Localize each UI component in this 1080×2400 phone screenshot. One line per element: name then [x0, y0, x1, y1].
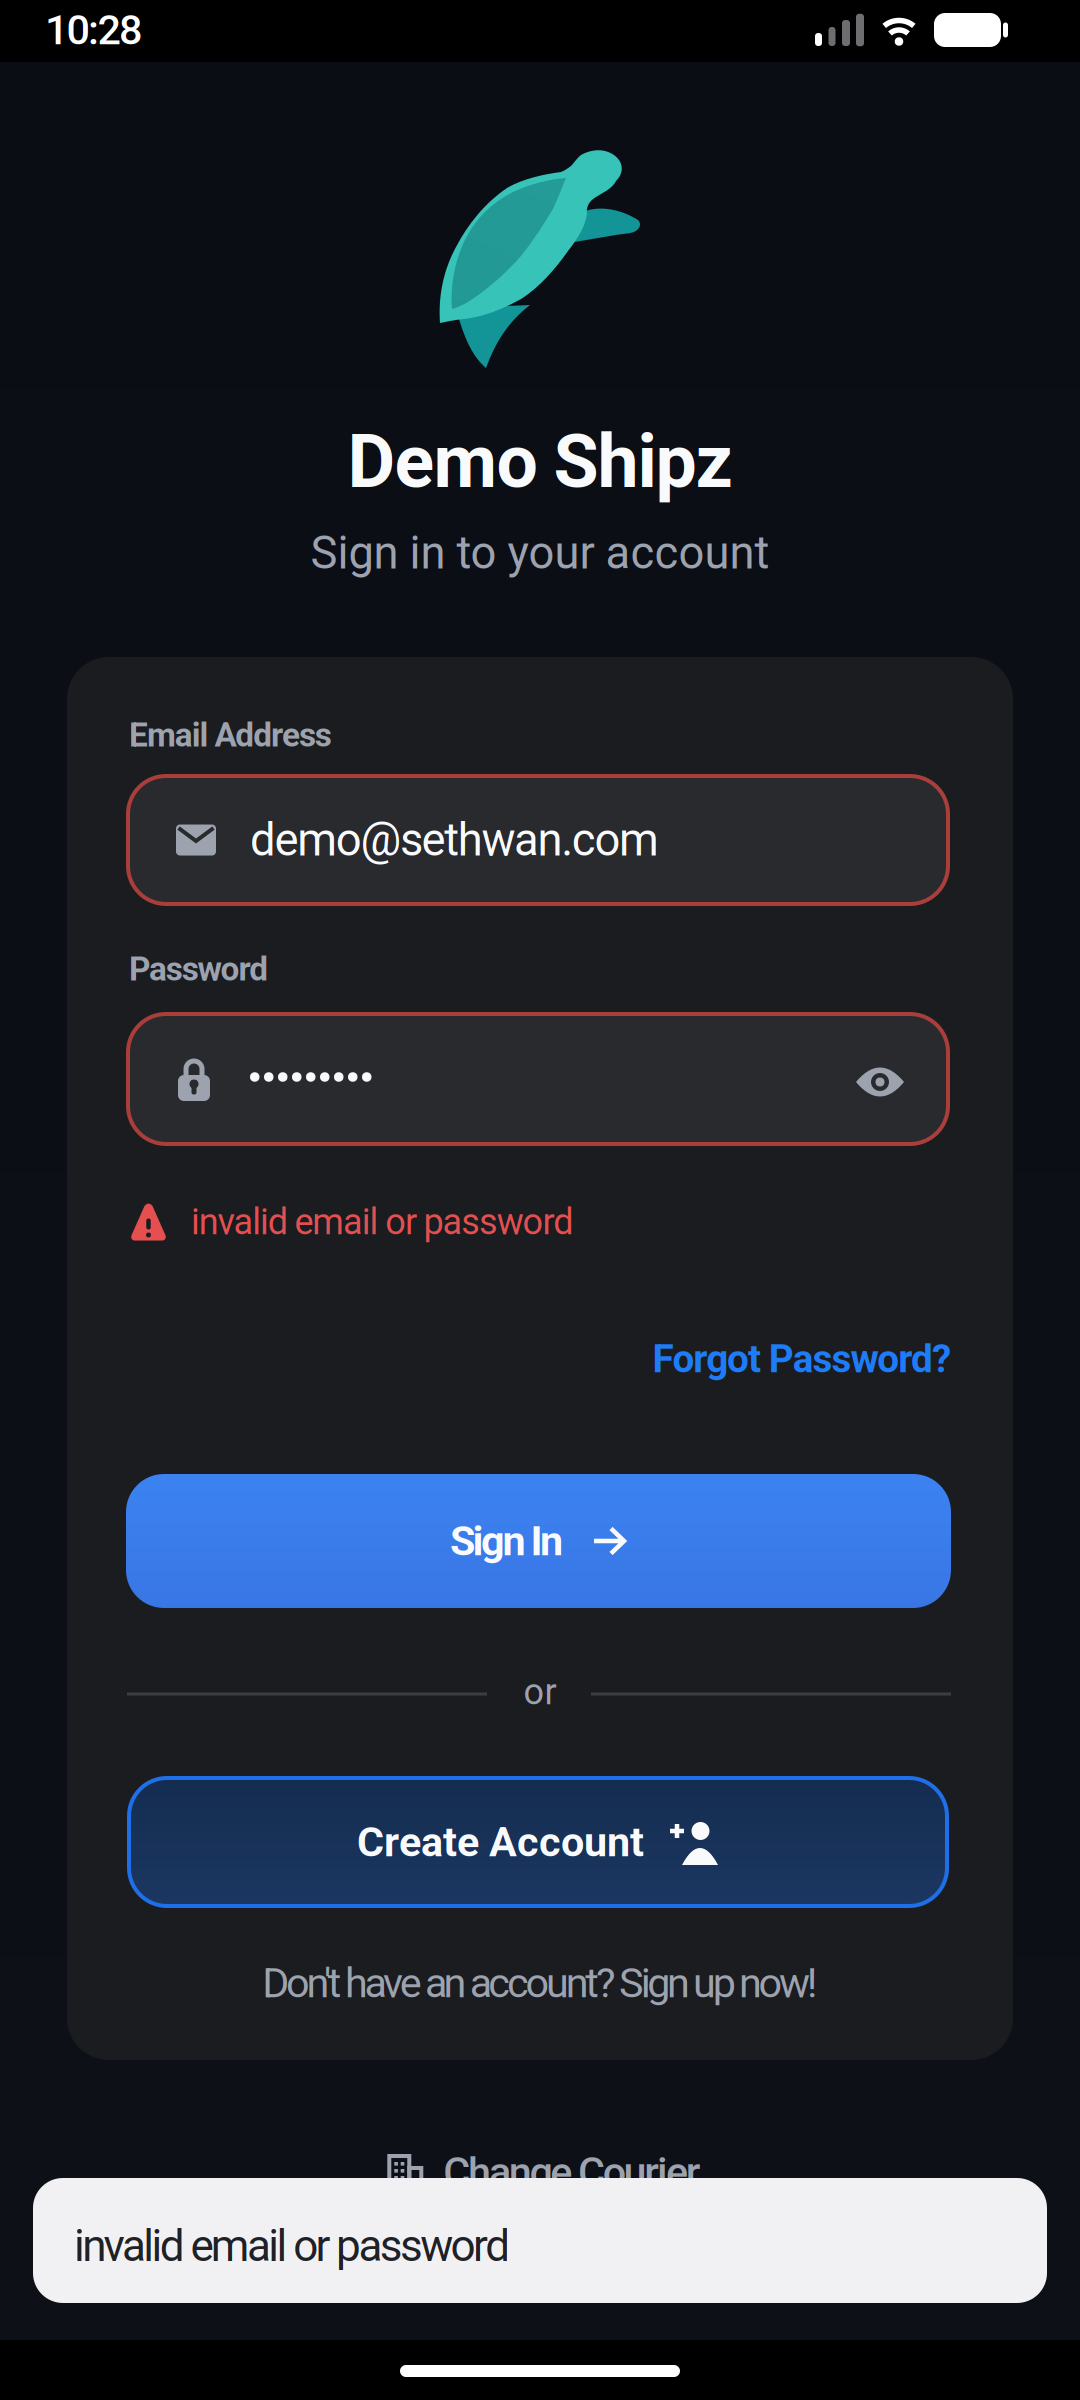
staticText: or: [523, 1671, 556, 1712]
staticText: Sign In: [450, 1517, 563, 1565]
button[interactable]: Show password: [856, 1033, 948, 1125]
staticText: Password: [129, 950, 268, 988]
staticText: demo@sethwan.com: [250, 814, 659, 866]
button[interactable]: Create Account: [129, 1778, 947, 1906]
staticText: invalid email or password: [191, 1201, 573, 1242]
staticText: Email Address: [129, 716, 332, 754]
staticText: Change Courier: [443, 2148, 701, 2196]
button[interactable]: [128, 1014, 948, 1144]
staticText: Sign in to your account: [310, 527, 769, 579]
staticText: Forgot Password?: [652, 1337, 951, 1381]
button[interactable]: Forgot Password?: [652, 1337, 951, 1381]
staticText: Demo Shipz: [347, 420, 732, 504]
button[interactable]: demo@sethwan.com: [128, 776, 948, 904]
staticText: invalid email or password: [74, 2221, 510, 2271]
staticText: 10:28: [45, 6, 142, 54]
button[interactable]: Change Courier: [387, 2148, 701, 2196]
staticText: Create Account: [357, 1818, 644, 1866]
staticText: Don't have an account? Sign up now!: [262, 1959, 818, 2007]
button[interactable]: Sign In: [126, 1474, 951, 1608]
